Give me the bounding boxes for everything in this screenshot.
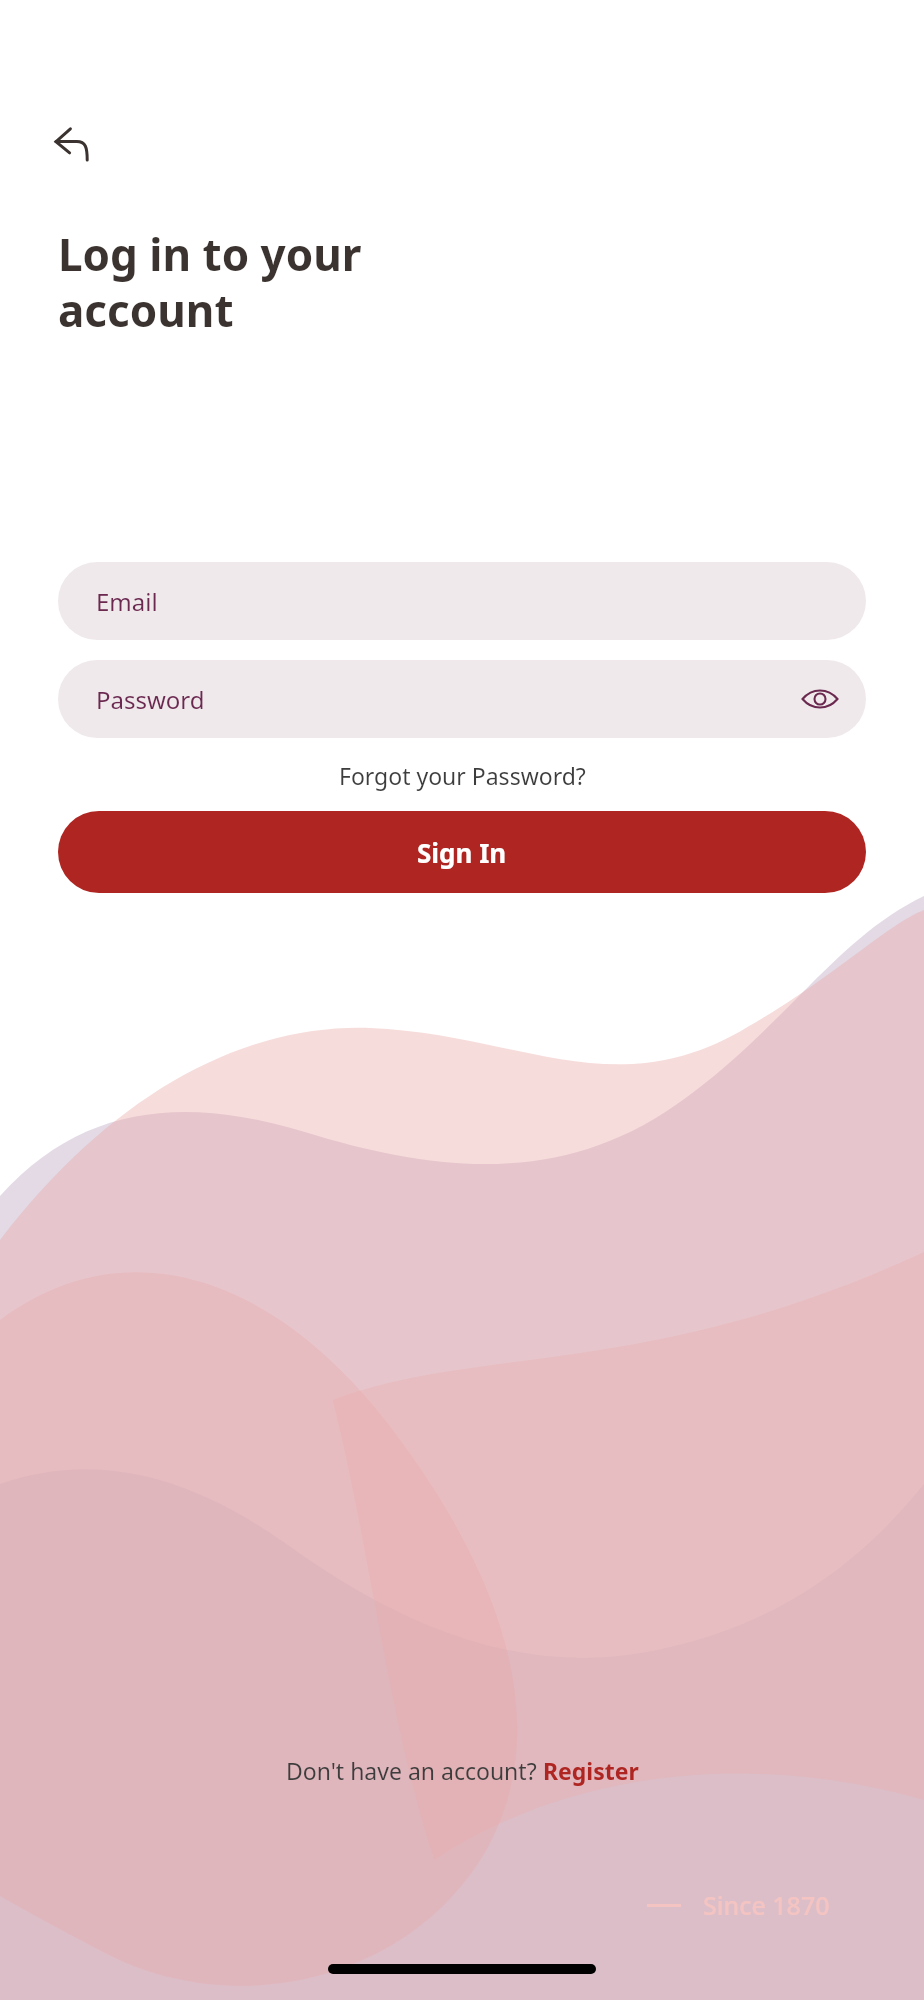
button[interactable]: Email xyxy=(58,562,866,640)
staticText: Forgot your Password? xyxy=(339,760,586,791)
staticText: Since 1870 xyxy=(703,1888,830,1922)
button[interactable]: Show password xyxy=(794,673,846,725)
button[interactable]: Back xyxy=(44,116,100,172)
staticText: Don't have an account? xyxy=(286,1755,543,1786)
button[interactable]: Sign In xyxy=(58,811,866,893)
button[interactable]: Forgot your Password? xyxy=(329,756,596,795)
staticText: Email xyxy=(96,585,158,618)
button[interactable]: Don't have an account? xyxy=(276,1749,649,1792)
staticText: Log in to your account xyxy=(58,224,362,340)
staticText: Register xyxy=(543,1755,639,1786)
button[interactable]: Password xyxy=(58,660,866,738)
staticText: Password xyxy=(96,683,205,716)
staticText: Sign In xyxy=(417,835,507,870)
